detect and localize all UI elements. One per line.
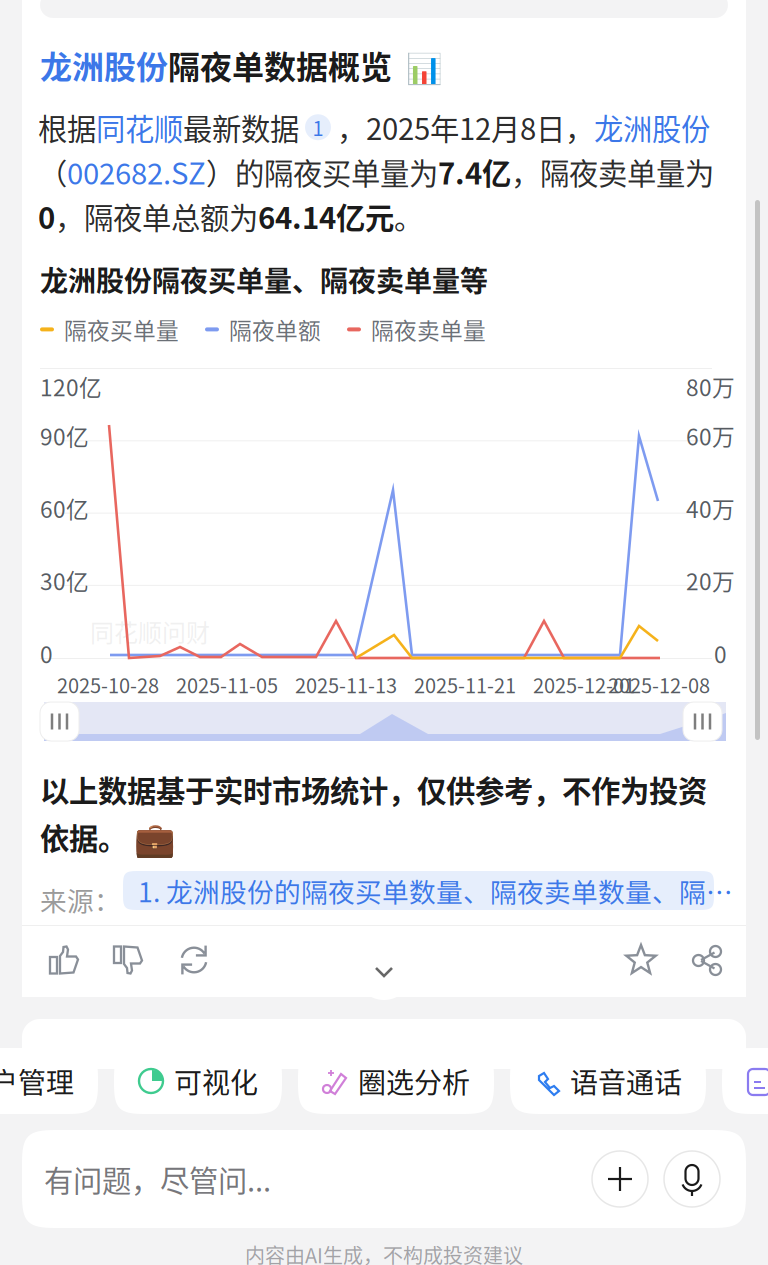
staticText: （ — [38, 150, 67, 193]
button[interactable]: Range end — [40, 702, 79, 741]
button[interactable]: 账户管理 — [0, 1048, 98, 1114]
staticText: 📊 — [392, 45, 443, 88]
staticText: 内容由AI生成，不构成投资建议 — [245, 1240, 523, 1265]
staticText: 隔夜单数据概览 — [168, 42, 392, 88]
button[interactable]: 文本解读 — [722, 1048, 768, 1114]
staticText: 同花顺问财 — [90, 614, 210, 649]
button[interactable]: Voice input — [664, 1151, 720, 1207]
staticText: 以上数据基于实时市场统计，仅供参考，不作为投资 — [40, 768, 707, 810]
button[interactable]: Regenerate — [170, 936, 218, 984]
staticText: 同花顺 — [96, 106, 183, 148]
staticText: 依据。 — [40, 815, 127, 858]
button[interactable]: 1. 龙洲股份的隔夜买单数量、隔夜卖单数量、隔… — [123, 871, 714, 910]
staticText: 最新数据 — [183, 106, 299, 148]
staticText: 2025-11-05 — [176, 670, 278, 699]
button[interactable]: 可视化 — [114, 1048, 282, 1114]
staticText: 💼 — [127, 812, 176, 861]
staticText: 圈选分析 — [358, 1061, 470, 1101]
staticText: ）的隔夜买单量为 — [206, 150, 438, 193]
staticText: 60万 — [686, 419, 735, 452]
staticText: 120亿 — [40, 370, 102, 403]
staticText: 2025-12-01 — [533, 670, 635, 699]
button[interactable]: Scroll to bottom — [356, 944, 412, 1000]
staticText: 2025-11-13 — [295, 670, 397, 699]
staticText: 隔夜单额 — [229, 313, 321, 346]
staticText: 0 — [714, 637, 727, 670]
button[interactable]: Range start — [40, 702, 79, 741]
staticText: 002682.SZ — [67, 150, 206, 193]
button[interactable]: Dislike — [104, 936, 152, 984]
staticText: 账户管理 — [0, 1061, 74, 1101]
staticText: 64.14亿元 — [258, 195, 394, 237]
staticText: 龙洲股份 — [594, 106, 710, 148]
staticText: 龙洲股份 — [40, 42, 168, 88]
staticText: ，隔夜卖单量为 — [511, 150, 714, 193]
staticText: 60亿 — [40, 492, 89, 524]
staticText: 80万 — [686, 370, 735, 403]
staticText: 0 — [40, 637, 53, 670]
button[interactable]: Like — [40, 936, 88, 984]
button[interactable]: Add attachment — [592, 1151, 648, 1207]
staticText: 龙洲股份隔夜买单量、隔夜卖单量等 — [40, 259, 488, 299]
staticText: 1 — [312, 113, 323, 142]
button[interactable]: Favourite — [617, 936, 665, 984]
staticText: 1. 龙洲股份的隔夜买单数量、隔夜卖单数量、隔… — [138, 871, 733, 910]
staticText: 根据 — [38, 106, 96, 148]
staticText: 90亿 — [40, 419, 89, 452]
staticText: ，隔夜单总额为 — [55, 195, 258, 237]
staticText: 2025-12-08 — [608, 670, 710, 699]
staticText: 40万 — [686, 492, 735, 524]
staticText: 有问题，尽管问... — [44, 1158, 271, 1200]
staticText: 0 — [38, 195, 55, 237]
staticText: 隔夜买单量 — [64, 313, 179, 346]
staticText: 2025-11-21 — [414, 670, 516, 699]
staticText: ，2025年12月8日， — [337, 106, 594, 148]
button[interactable]: 圈选分析 — [298, 1048, 494, 1114]
staticText: 可视化 — [174, 1061, 258, 1101]
staticText: 20万 — [686, 564, 735, 597]
button[interactable]: Share — [683, 936, 731, 984]
staticText: 2025-10-28 — [57, 670, 159, 699]
staticText: 隔夜卖单量 — [371, 313, 486, 346]
staticText: 来源： — [40, 880, 121, 919]
staticText: 30亿 — [40, 564, 89, 597]
button[interactable]: 语音通话 — [510, 1048, 706, 1114]
staticText: 。 — [394, 195, 423, 237]
staticText: 语音通话 — [570, 1061, 682, 1101]
staticText: 7.4亿 — [438, 150, 511, 193]
